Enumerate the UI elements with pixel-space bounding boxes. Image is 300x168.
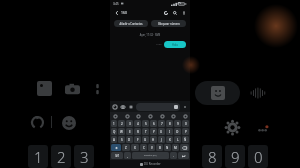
button[interactable]: Y [150, 128, 157, 135]
button[interactable]: Key [178, 152, 189, 159]
button[interactable]: 9 [174, 120, 181, 127]
button[interactable]: Key [180, 144, 189, 151]
button[interactable]: L [174, 136, 181, 143]
button[interactable]: GIF [112, 113, 118, 119]
button[interactable]: Settings [147, 113, 153, 119]
button[interactable]: G [142, 136, 149, 143]
button[interactable]: More options [180, 9, 187, 16]
button[interactable]: 5 [142, 120, 149, 127]
button[interactable]: R [134, 128, 141, 135]
button[interactable]: S [118, 136, 125, 143]
button[interactable]: 8 [166, 120, 173, 127]
staticText: 2 [121, 122, 123, 126]
button[interactable]: H [150, 136, 157, 143]
button[interactable]: N [164, 144, 171, 151]
button[interactable]: E [126, 128, 133, 135]
staticText: 4 [137, 122, 139, 126]
button[interactable]: I [166, 128, 173, 135]
button[interactable]: Z [122, 144, 130, 151]
button[interactable]: Español (ES) [132, 152, 169, 159]
button[interactable]: V [148, 144, 155, 151]
button[interactable]: 7 [158, 120, 165, 127]
button[interactable]: Camera [120, 104, 126, 110]
staticText: 160 [121, 10, 127, 15]
staticText: Q [113, 130, 116, 134]
staticText: !#1 [115, 154, 120, 158]
button[interactable]: W [118, 128, 125, 135]
button[interactable]: Expand [182, 113, 188, 119]
button[interactable]: U [158, 128, 165, 135]
staticText: L [177, 138, 179, 142]
staticText: M [174, 146, 177, 150]
button[interactable]: 8 [202, 145, 222, 168]
staticText: 3:45 [113, 2, 119, 6]
button[interactable]: Añadir a Contactos [114, 20, 148, 27]
button[interactable]: Translate [170, 113, 176, 119]
staticText: 0 [254, 147, 263, 167]
button[interactable]: M [172, 144, 179, 151]
button[interactable]: Search [171, 9, 178, 16]
button[interactable]: Send [182, 104, 188, 110]
staticText: U [160, 130, 163, 134]
staticText: Ñ [184, 138, 187, 142]
staticText: S [121, 138, 123, 142]
button[interactable]: Call [162, 9, 169, 16]
button[interactable]: C [140, 144, 147, 151]
staticText: Español (ES) [144, 154, 157, 157]
button[interactable]: 2 [51, 145, 71, 168]
button[interactable]: 9 [225, 145, 245, 168]
staticText: X [134, 146, 136, 150]
button[interactable]: Q [111, 128, 117, 135]
staticText: 9 [177, 122, 179, 126]
button[interactable]: Apps [128, 104, 134, 110]
button[interactable]: X [131, 144, 139, 151]
button[interactable]: Bloquear número [151, 20, 186, 27]
staticText: 9 [231, 147, 240, 167]
staticText: Z [125, 146, 127, 150]
staticText: C [143, 146, 145, 150]
staticText: T [145, 130, 147, 134]
button[interactable] [136, 103, 180, 111]
button[interactable]: 2 [118, 120, 125, 127]
button[interactable]: J [158, 136, 165, 143]
staticText: 8 [169, 122, 171, 126]
button[interactable]: Clipboard [135, 113, 141, 119]
button[interactable]: Sticker [124, 113, 130, 119]
button[interactable]: Key [111, 144, 121, 151]
button[interactable]: 3 [126, 120, 133, 127]
button[interactable]: 0 [182, 120, 189, 127]
staticText: 6 [153, 122, 155, 126]
button[interactable]: 1 [28, 145, 48, 168]
button[interactable]: Gallery [112, 104, 118, 110]
staticText: 1 [34, 147, 43, 167]
staticText: Añadir a Contactos [119, 22, 143, 26]
button[interactable]: D [126, 136, 133, 143]
button[interactable]: 6 [150, 120, 157, 127]
button[interactable]: O [174, 128, 181, 135]
staticText: R [137, 130, 139, 134]
button[interactable]: Back [113, 9, 120, 16]
button[interactable]: B [156, 144, 163, 151]
button[interactable]: F [134, 136, 141, 143]
staticText: 1 [113, 122, 115, 126]
button[interactable]: 3 [74, 145, 94, 168]
button[interactable]: Mic [159, 113, 165, 119]
button[interactable]: K [166, 136, 173, 143]
button[interactable]: Hola [164, 41, 186, 48]
button[interactable]: P [182, 128, 189, 135]
button[interactable]: 1 [111, 120, 117, 127]
button[interactable]: !#1 [111, 152, 123, 159]
button[interactable]: , [124, 152, 131, 159]
staticText: 3 [80, 147, 89, 167]
button[interactable]: 0 [248, 145, 268, 168]
staticText: 5 [145, 122, 147, 126]
button[interactable]: A [111, 136, 117, 143]
button[interactable]: Ñ [182, 136, 189, 143]
staticText: E [129, 130, 131, 134]
staticText: G [144, 138, 147, 142]
staticText: J [161, 138, 162, 142]
button[interactable]: . [170, 152, 177, 159]
button[interactable]: 4 [134, 120, 141, 127]
button[interactable]: Stickers [195, 81, 240, 105]
button[interactable]: T [142, 128, 149, 135]
